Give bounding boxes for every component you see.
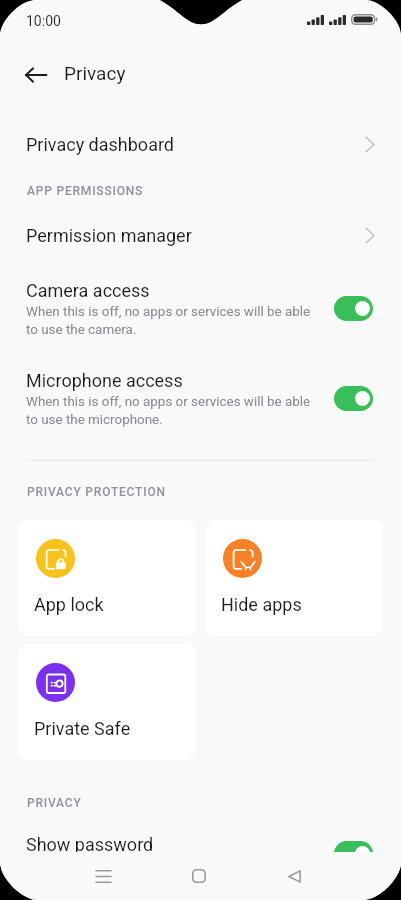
staticText: PRIVACY PROTECTION bbox=[27, 485, 166, 499]
button[interactable]: Toggle on bbox=[334, 296, 373, 321]
button[interactable]: Permission manager bbox=[0, 215, 401, 255]
staticText: 10:00 bbox=[26, 13, 61, 29]
button[interactable]: Back bbox=[20, 59, 52, 91]
button[interactable]: App lock bbox=[18, 520, 196, 636]
button[interactable]: Back bbox=[271, 853, 317, 899]
staticText: Privacy bbox=[64, 62, 126, 84]
staticText: APP PERMISSIONS bbox=[27, 184, 144, 198]
staticText: Camera access bbox=[26, 280, 150, 301]
staticText: Show password bbox=[26, 834, 154, 855]
button[interactable]: Camera access bbox=[0, 277, 401, 339]
button[interactable]: Hide apps bbox=[205, 520, 383, 636]
staticText: Private Safe bbox=[34, 718, 131, 739]
staticText: Permission manager bbox=[26, 225, 192, 246]
button[interactable]: Recent apps bbox=[80, 853, 126, 899]
staticText: Microphone access bbox=[26, 370, 183, 391]
button[interactable]: Home bbox=[176, 853, 222, 899]
button[interactable]: Privacy dashboard bbox=[0, 124, 401, 164]
staticText: PRIVACY bbox=[27, 796, 82, 810]
button[interactable]: Private Safe bbox=[18, 644, 196, 760]
staticText: Privacy dashboard bbox=[26, 134, 175, 155]
button[interactable]: Show password bbox=[0, 823, 401, 885]
button[interactable]: Microphone access bbox=[0, 367, 401, 429]
button[interactable]: Toggle on bbox=[334, 386, 373, 411]
staticText: When this is off, no apps or services wi… bbox=[26, 394, 311, 427]
button[interactable]: Toggle on bbox=[334, 841, 373, 866]
staticText: App lock bbox=[34, 594, 104, 615]
staticText: Hide apps bbox=[221, 594, 302, 615]
staticText: When this is off, no apps or services wi… bbox=[26, 304, 311, 337]
